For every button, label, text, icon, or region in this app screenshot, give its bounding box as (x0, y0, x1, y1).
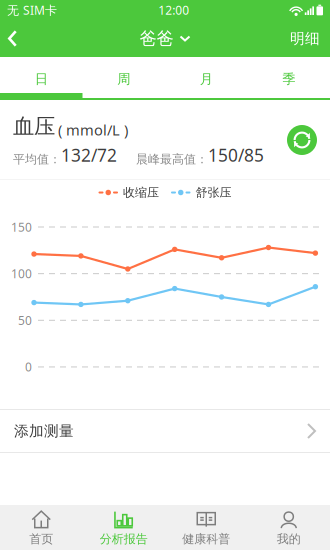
staticText: 晨峰最高值： (136, 152, 208, 167)
staticText: 150/85 (208, 144, 264, 167)
staticText: 首页 (29, 532, 53, 546)
button[interactable]: 我的 (247, 504, 330, 550)
staticText: ( mmol/L ) (58, 120, 128, 140)
button[interactable]: 月 (165, 58, 247, 100)
button[interactable]: 健康科普 (165, 504, 247, 550)
staticText: 添加测量 (14, 422, 74, 440)
staticText: 分析报告 (100, 532, 148, 546)
button[interactable]: 季 (247, 58, 330, 100)
staticText: 周 (117, 71, 130, 87)
button[interactable]: 日 (0, 58, 82, 100)
button[interactable]: Refresh (287, 125, 317, 155)
button[interactable]: 周 (82, 58, 165, 100)
button[interactable]: Back (0, 25, 31, 52)
staticText: 健康科普 (182, 532, 230, 546)
button[interactable]: 首页 (0, 504, 82, 550)
staticText: 无 SIM卡 (7, 2, 57, 18)
staticText: 收缩压 (123, 185, 159, 200)
staticText: 50 (18, 312, 32, 328)
staticText: 100 (11, 266, 32, 282)
staticText: 血压 (13, 113, 55, 140)
staticText: 12:00 (158, 2, 189, 18)
button[interactable]: 分析报告 (82, 504, 165, 550)
staticText: 132/72 (61, 144, 117, 167)
staticText: 爸爸 (139, 28, 173, 49)
staticText: 日 (35, 71, 48, 87)
button[interactable]: 爸爸 (131, 24, 198, 53)
staticText: 明细 (290, 29, 320, 47)
staticText: 我的 (277, 532, 301, 546)
staticText: 季 (282, 71, 295, 87)
button[interactable]: 添加测量 (0, 409, 330, 453)
staticText: 月 (200, 71, 213, 87)
button[interactable]: 明细 (280, 24, 330, 52)
staticText: 舒张压 (195, 185, 231, 200)
staticText: 平均值： (13, 152, 61, 167)
staticText: 0 (25, 359, 32, 375)
staticText: 150 (11, 219, 32, 235)
